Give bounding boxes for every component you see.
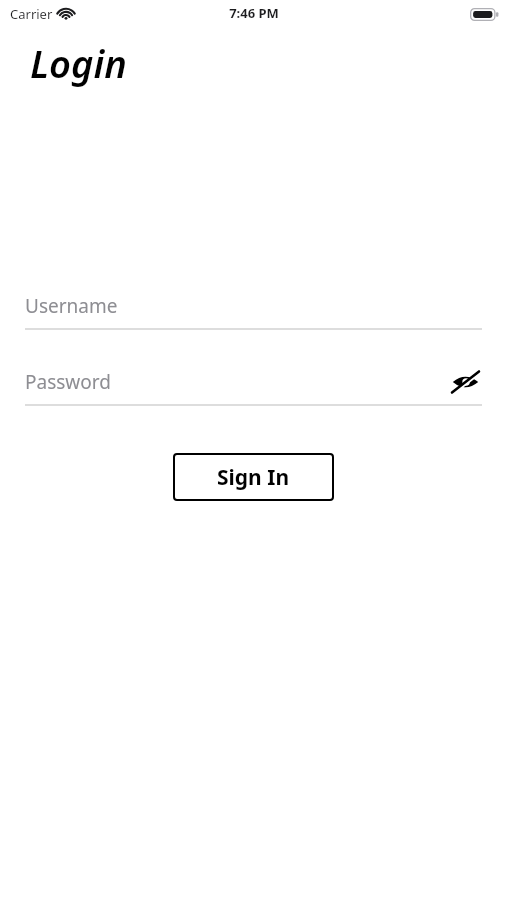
button[interactable]: Show password: [448, 365, 482, 399]
staticText: Password: [25, 369, 111, 395]
staticText: Carrier: [10, 5, 53, 23]
staticText: Login: [30, 37, 127, 89]
button[interactable]: Sign In: [173, 453, 334, 501]
button[interactable]: Username: [25, 284, 482, 330]
staticText: Sign In: [217, 463, 290, 492]
staticText: 7:46 PM: [229, 4, 279, 22]
button[interactable]: Password: [25, 360, 482, 406]
staticText: Username: [25, 293, 118, 319]
